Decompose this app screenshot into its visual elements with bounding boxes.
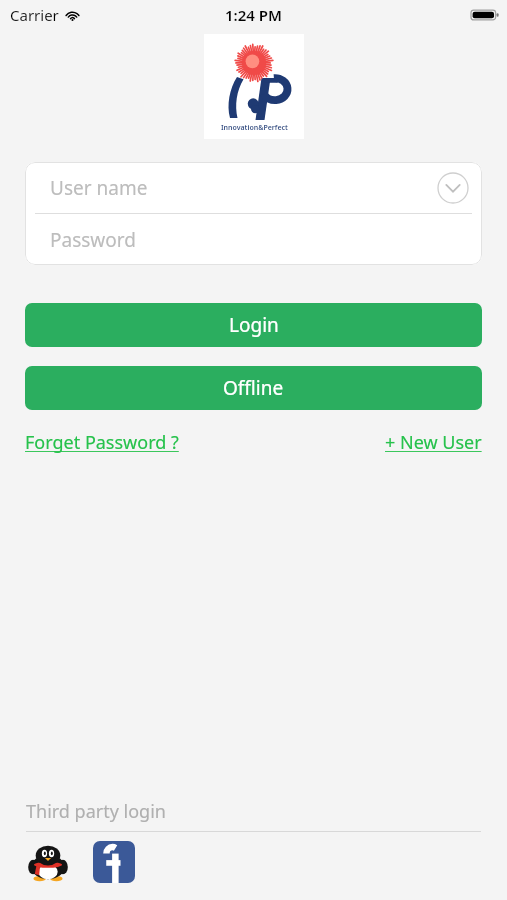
staticText: 1:24 PM	[225, 5, 282, 25]
button[interactable]: Password	[25, 214, 482, 265]
button[interactable]: Login	[25, 303, 482, 347]
staticText: Password	[50, 227, 136, 253]
staticText: Third party login	[26, 799, 166, 824]
staticText: Innovation&Perfect	[221, 123, 288, 133]
button[interactable]: + New User	[385, 430, 482, 455]
button[interactable]: Login with QQ	[26, 840, 70, 884]
button[interactable]: Offline	[25, 366, 482, 410]
button[interactable]: User name	[25, 162, 482, 213]
staticText: + New User	[385, 430, 482, 455]
staticText: Login	[229, 312, 279, 338]
staticText: Forget Password ?	[25, 430, 179, 455]
staticText: User name	[50, 175, 148, 201]
staticText: Offline	[223, 375, 284, 401]
button[interactable]: Show saved accounts	[437, 172, 469, 204]
button[interactable]: Login with Facebook	[93, 841, 135, 883]
button[interactable]: Forget Password ?	[25, 430, 179, 455]
staticText: Carrier	[10, 5, 59, 25]
